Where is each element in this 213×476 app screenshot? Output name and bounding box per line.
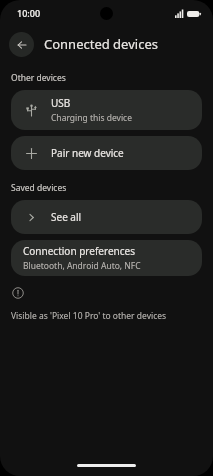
button[interactable]: See all xyxy=(11,200,202,234)
staticText: Other devices xyxy=(11,72,66,84)
button[interactable]: Back xyxy=(9,32,34,57)
staticText: Connection preferences xyxy=(23,244,135,258)
staticText: USB xyxy=(51,96,71,110)
staticText: See all xyxy=(51,210,82,224)
button[interactable]: Pair new device xyxy=(11,136,202,170)
staticText: Connected devices xyxy=(44,35,158,53)
staticText: Visible as 'Pixel 10 Pro' to other devic… xyxy=(11,310,167,322)
staticText: Bluetooth, Android Auto, NFC xyxy=(23,260,141,272)
staticText: Saved devices xyxy=(11,182,67,194)
button[interactable]: USB xyxy=(11,90,202,130)
staticText: 10:00 xyxy=(17,7,41,19)
button[interactable]: Connection preferences xyxy=(11,240,202,276)
staticText: Charging this device xyxy=(51,112,132,124)
staticText: Pair new device xyxy=(51,146,124,160)
